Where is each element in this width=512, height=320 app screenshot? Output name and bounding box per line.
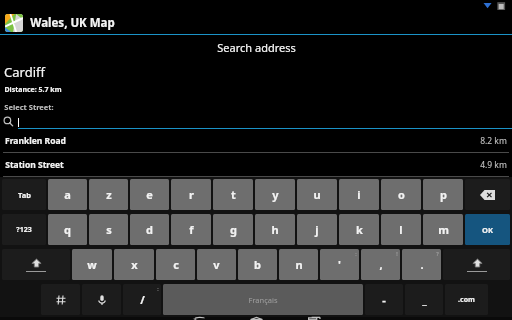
staticText: z — [106, 187, 112, 202]
staticText: i — [357, 187, 361, 202]
staticText: OK — [482, 225, 493, 235]
button[interactable]: h — [255, 214, 295, 245]
button[interactable]: Delete — [465, 179, 510, 210]
button[interactable]: Français — [163, 284, 363, 315]
button[interactable]: i — [339, 179, 379, 210]
staticText: q — [64, 222, 71, 237]
button[interactable]: d — [130, 214, 169, 245]
button[interactable]: t — [213, 179, 253, 210]
button[interactable]: Recent apps — [294, 317, 334, 320]
staticText: , — [379, 257, 383, 272]
button[interactable]: f — [171, 214, 211, 245]
button[interactable]: w — [72, 249, 112, 280]
button[interactable]: e — [130, 179, 169, 210]
staticText: Cardiff — [4, 63, 45, 81]
staticText: ? — [436, 250, 439, 257]
staticText: b — [254, 257, 261, 272]
button[interactable]: ' — [320, 249, 359, 280]
button[interactable]: u — [297, 179, 337, 210]
button[interactable]: z — [89, 179, 128, 210]
button[interactable]: , — [361, 249, 400, 280]
staticText: v — [213, 257, 220, 272]
button[interactable]: c — [156, 249, 195, 280]
staticText: p — [440, 187, 447, 202]
staticText: 8.2 km — [480, 135, 507, 147]
button[interactable]: .com — [445, 284, 488, 315]
staticText: k — [356, 222, 363, 237]
staticText: Français — [248, 295, 278, 305]
staticText: y — [272, 187, 279, 202]
button[interactable]: q — [48, 214, 87, 245]
staticText: d — [146, 222, 153, 237]
button[interactable]: Search — [0, 114, 512, 129]
button[interactable]: _ — [405, 284, 443, 315]
staticText: r — [189, 187, 194, 202]
staticText: l — [399, 222, 403, 237]
button[interactable]: ?123 — [2, 214, 46, 245]
button[interactable]: l — [381, 214, 421, 245]
staticText: ! — [396, 250, 398, 257]
staticText: s — [106, 222, 112, 237]
button[interactable]: v — [197, 249, 236, 280]
staticText: 4.9 km — [480, 159, 507, 171]
button[interactable]: k — [339, 214, 379, 245]
button[interactable]: OK — [465, 214, 510, 245]
staticText: m — [438, 222, 449, 237]
staticText: t — [231, 187, 236, 202]
button[interactable]: . — [402, 249, 441, 280]
staticText: . — [420, 257, 424, 272]
button[interactable]: j — [297, 214, 337, 245]
staticText: : — [355, 250, 357, 257]
staticText: ?123 — [16, 225, 32, 235]
staticText: h — [271, 222, 279, 237]
button[interactable]: Shift — [2, 249, 70, 280]
button[interactable]: Shift — [443, 249, 510, 280]
button[interactable]: Switch keyboard — [41, 284, 80, 315]
button[interactable]: o — [381, 179, 421, 210]
button[interactable]: g — [213, 214, 253, 245]
button[interactable]: y — [255, 179, 295, 210]
staticText: _ — [422, 292, 427, 307]
staticText: x — [131, 257, 138, 272]
button[interactable]: b — [238, 249, 277, 280]
staticText: u — [313, 187, 321, 202]
button[interactable]: - — [365, 284, 403, 315]
button[interactable]: r — [171, 179, 211, 210]
staticText: Wales, UK Map — [30, 15, 115, 31]
staticText: c — [173, 257, 179, 272]
staticText: Distance: 5.7 km — [4, 85, 62, 95]
button[interactable]: a — [48, 179, 87, 210]
button[interactable]: Voice input — [82, 284, 121, 315]
button[interactable]: Home — [236, 317, 276, 320]
staticText: o — [398, 187, 405, 202]
staticText: : — [157, 285, 159, 292]
button[interactable]: Station Street — [0, 153, 512, 176]
button[interactable]: Franklen Road — [0, 129, 512, 152]
staticText: Franklen Road — [5, 135, 66, 147]
staticText: g — [230, 222, 237, 237]
button[interactable]: n — [279, 249, 318, 280]
staticText: a — [64, 187, 71, 202]
other: Search — [3, 116, 14, 127]
staticText: w — [87, 257, 97, 272]
button[interactable]: Back — [178, 317, 218, 320]
staticText: f — [189, 222, 194, 237]
button[interactable]: Tab — [2, 179, 46, 210]
staticText: Select Street: — [4, 102, 54, 112]
button[interactable]: m — [423, 214, 463, 245]
staticText: e — [146, 187, 153, 202]
staticText: / — [140, 292, 145, 307]
staticText: Search address — [217, 40, 296, 55]
staticText: .com — [458, 295, 475, 305]
staticText: j — [315, 222, 319, 237]
staticText: Station Street — [5, 159, 64, 171]
staticText: Tab — [18, 190, 31, 200]
button[interactable]: / — [123, 284, 161, 315]
button[interactable]: p — [423, 179, 463, 210]
staticText: - — [382, 292, 386, 307]
staticText: n — [295, 257, 303, 272]
button[interactable]: x — [114, 249, 154, 280]
button[interactable]: s — [89, 214, 128, 245]
staticText: ' — [338, 257, 341, 272]
